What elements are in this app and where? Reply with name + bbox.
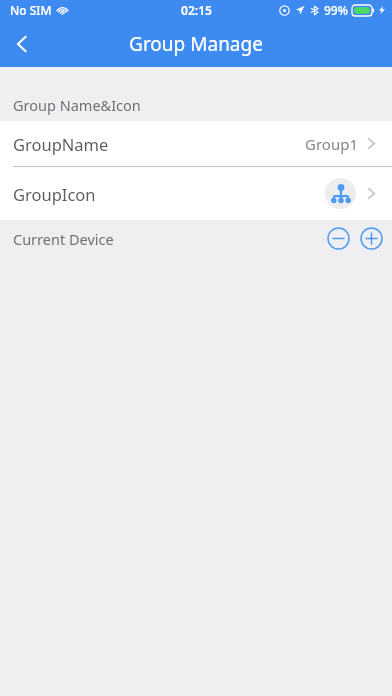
button[interactable]: Remove device — [327, 227, 350, 250]
staticText: Group Manage — [129, 31, 263, 57]
button[interactable]: GroupName — [0, 121, 392, 166]
staticText: Current Device — [13, 229, 114, 249]
staticText: 99% — [324, 2, 348, 18]
staticText: No SIM — [10, 2, 52, 18]
staticText: Group1 — [305, 134, 358, 154]
staticText: GroupName — [13, 133, 109, 155]
button[interactable]: GroupIcon — [0, 167, 392, 220]
staticText: Group Name&Icon — [13, 95, 141, 115]
button[interactable]: Add device — [360, 227, 383, 250]
staticText: 02:15 — [181, 2, 212, 18]
staticText: GroupIcon — [13, 183, 96, 205]
button[interactable]: Back — [0, 22, 44, 66]
